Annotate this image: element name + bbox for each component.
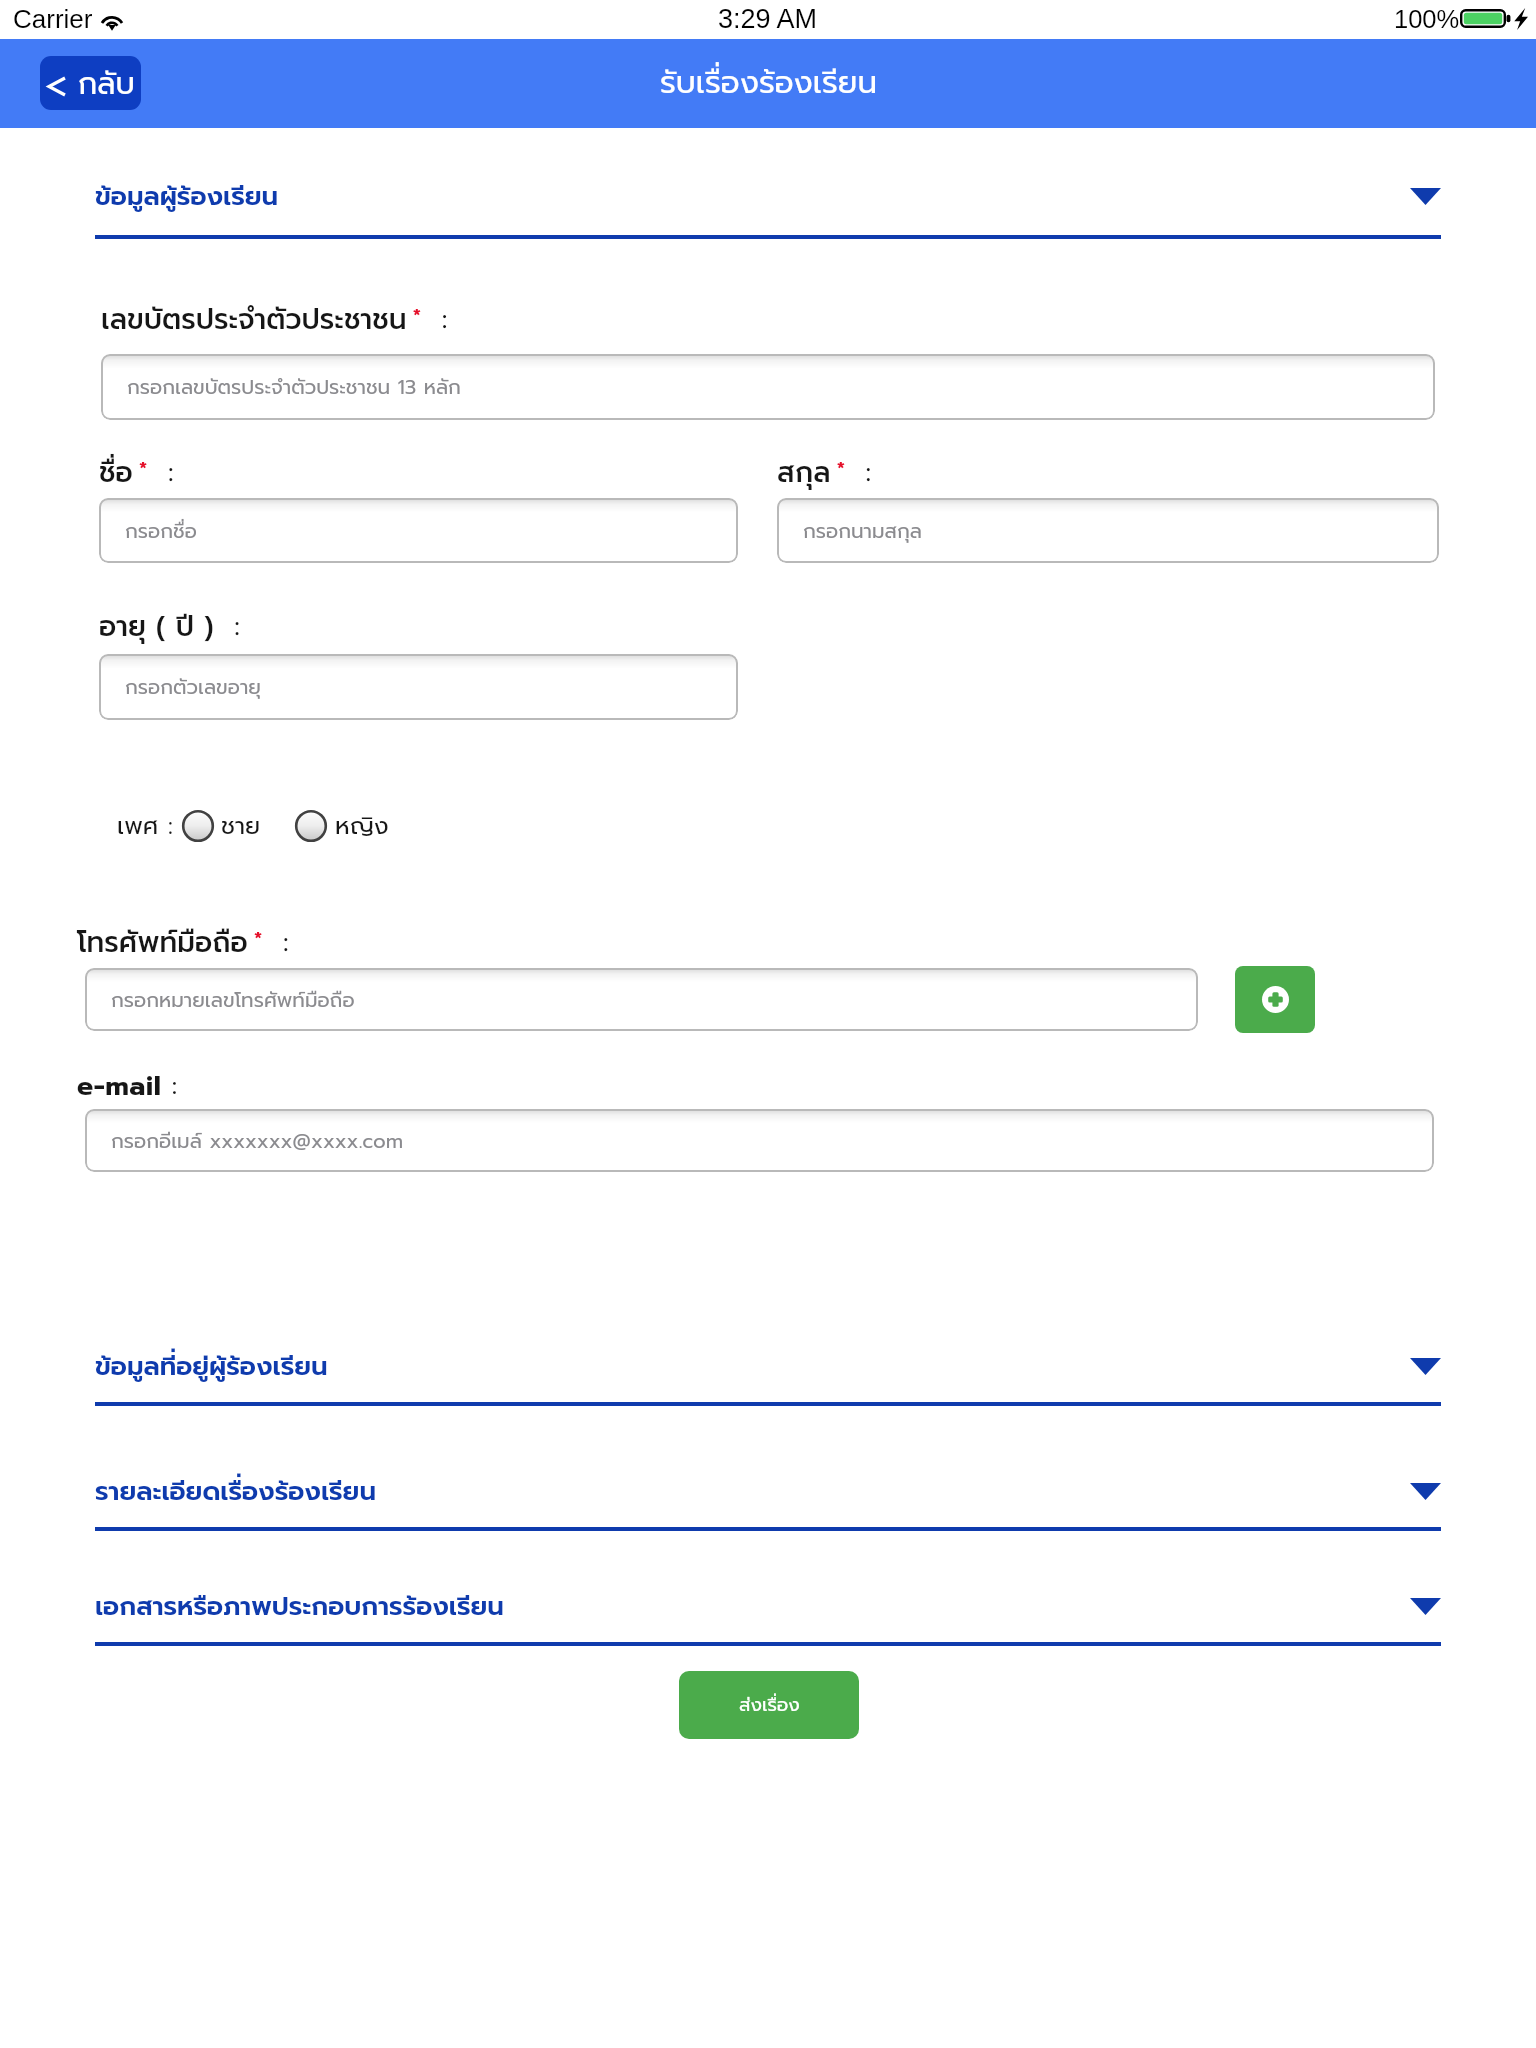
staticText: กรอกเลขบัตรประจำตัวประชาชน 13 หลัก	[127, 372, 461, 402]
staticText: เพศ	[117, 808, 159, 844]
button[interactable]: กรอกนามสกุล	[777, 498, 1439, 563]
staticText: กรอกตัวเลขอายุ	[125, 672, 261, 702]
button[interactable]: เอกสารหรือภาพประกอบการร้องเรียน	[95, 1580, 1441, 1632]
staticText: กรอกอีเมล์ xxxxxxx@xxxx.com	[111, 1126, 404, 1156]
button[interactable]: ข้อมูลที่อยู่ผู้ร้องเรียน	[95, 1340, 1441, 1392]
staticText: :	[168, 808, 173, 844]
button[interactable]: Female	[294, 808, 389, 844]
staticText: 100%	[1394, 5, 1460, 33]
button[interactable]: Male	[181, 808, 261, 844]
staticText: ชื่อ * :	[99, 451, 174, 493]
staticText: ข้อมูลผู้ร้องเรียน	[95, 177, 279, 216]
staticText: กรอกนามสกุล	[803, 516, 922, 546]
staticText: กลับ	[78, 61, 135, 106]
staticText: ข้อมูลที่อยู่ผู้ร้องเรียน	[95, 1347, 328, 1386]
staticText: รับเรื่องร้องเรียน	[660, 59, 877, 106]
staticText: เอกสารหรือภาพประกอบการร้องเรียน	[95, 1587, 504, 1626]
staticText: กรอกชื่อ	[125, 516, 197, 546]
button[interactable]: ข้อมูลผู้ร้องเรียน	[95, 170, 1441, 222]
staticText: รายละเอียดเรื่องร้องเรียน	[95, 1472, 376, 1511]
staticText: เลขบัตรประจำตัวประชาชน * :	[101, 298, 448, 340]
staticText: โทรศัพท์มือถือ * :	[77, 921, 289, 963]
button[interactable]: รายละเอียดเรื่องร้องเรียน	[95, 1465, 1441, 1517]
staticText: ชาย	[221, 808, 261, 844]
staticText: e-mail :	[77, 1066, 178, 1107]
staticText: Carrier	[13, 4, 93, 33]
button[interactable]: กรอกอีเมล์ xxxxxxx@xxxx.com	[85, 1109, 1434, 1172]
staticText: กรอกหมายเลขโทรศัพท์มือถือ	[111, 985, 355, 1015]
button[interactable]: กลับ	[40, 56, 141, 110]
button[interactable]: กรอกเลขบัตรประจำตัวประชาชน 13 หลัก	[101, 354, 1435, 420]
staticText: อายุ ( ปี ) :	[99, 605, 240, 647]
button[interactable]: Add phone number	[1235, 966, 1315, 1033]
staticText: สกุล * :	[777, 451, 872, 493]
staticText: 3:29 AM	[718, 4, 818, 34]
button[interactable]: กรอกชื่อ	[99, 498, 738, 563]
button[interactable]: กรอกหมายเลขโทรศัพท์มือถือ	[85, 968, 1198, 1031]
staticText: หญิง	[335, 808, 389, 844]
button[interactable]: กรอกตัวเลขอายุ	[99, 654, 738, 720]
staticText: ส่งเรื่อง	[739, 1691, 800, 1719]
button[interactable]: ส่งเรื่อง	[679, 1671, 859, 1739]
